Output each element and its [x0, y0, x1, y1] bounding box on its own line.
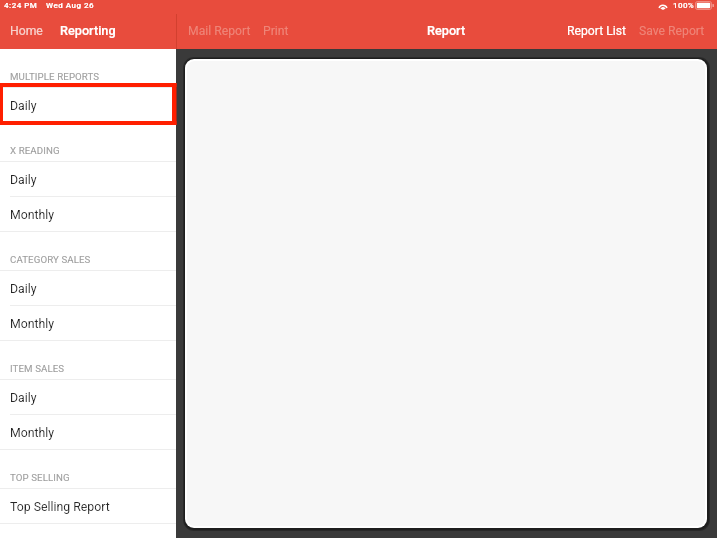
other: Battery 100 percent	[695, 1, 714, 10]
button[interactable]: Print	[261, 18, 291, 44]
staticText: MULTIPLE REPORTS	[10, 71, 100, 82]
staticText: Wed Aug 26	[46, 1, 95, 10]
button[interactable]: Monthly	[0, 306, 176, 341]
staticText: X READING	[10, 145, 60, 156]
staticText: Report	[427, 23, 466, 38]
other: Wi-Fi	[658, 1, 668, 10]
staticText: Report List	[567, 24, 627, 38]
button[interactable]: Reporting	[58, 17, 118, 44]
staticText: CATEGORY SALES	[10, 254, 91, 265]
staticText: ITEM SALES	[10, 363, 65, 374]
button[interactable]: Daily	[0, 162, 176, 197]
staticText: TOP SELLING	[10, 472, 70, 483]
staticText: Daily	[10, 99, 37, 113]
button[interactable]: Daily	[0, 380, 176, 415]
staticText: Daily	[10, 391, 37, 405]
button[interactable]: Mail Report	[186, 18, 253, 44]
button[interactable]: Monthly	[0, 197, 176, 232]
staticText: Reporting	[60, 23, 116, 38]
button[interactable]: Save Report	[637, 18, 707, 44]
button[interactable]: Home	[8, 18, 45, 44]
staticText: Home	[10, 24, 43, 38]
staticText: Mail Report	[188, 24, 251, 38]
staticText: 4:24 PM	[4, 1, 38, 10]
staticText: Print	[263, 24, 289, 38]
button[interactable]: Monthly	[0, 415, 176, 450]
staticText: Top Selling Report	[10, 500, 110, 514]
button[interactable]: Report List	[565, 18, 629, 44]
staticText: Monthly	[10, 317, 55, 331]
button[interactable]: Daily	[0, 88, 176, 123]
button[interactable]: Daily	[0, 271, 176, 306]
staticText: Daily	[10, 173, 37, 187]
staticText: Monthly	[10, 426, 55, 440]
staticText: 100%	[673, 1, 695, 10]
staticText: Save Report	[639, 24, 705, 38]
staticText: Monthly	[10, 208, 55, 222]
button[interactable]: Top Selling Report	[0, 489, 176, 524]
staticText: Daily	[10, 282, 37, 296]
